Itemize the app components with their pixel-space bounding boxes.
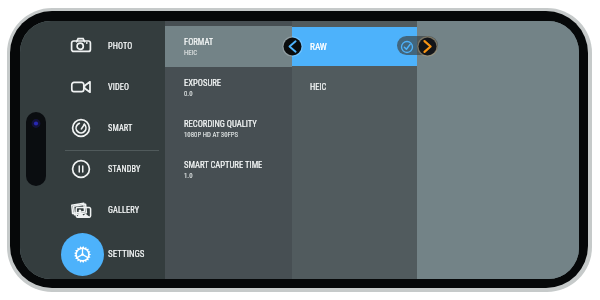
button[interactable]: VIDEO [20,66,165,107]
button[interactable]: SMART CAPTURE TIME [165,149,292,190]
button[interactable]: HEIC [292,66,417,108]
button[interactable]: GALLERY [20,189,165,230]
staticText: HEIC [184,49,198,57]
staticText: FORMAT [184,37,214,47]
button[interactable]: Previous option group [282,36,303,57]
staticText: HEIC [310,82,327,92]
button[interactable]: SETTINGS [20,230,165,279]
staticText: GALLERY [108,205,140,215]
button[interactable]: SMART [20,107,165,148]
button[interactable]: STANDBY [20,148,165,189]
staticText: SETTINGS [108,249,145,260]
button[interactable]: PHOTO [20,25,165,66]
staticText: 0.0 [184,90,193,98]
staticText: 1.0 [184,172,193,180]
staticText: STANDBY [108,164,141,174]
staticText: 1080P HD AT 30FPS [184,131,239,139]
staticText: VIDEO [108,82,130,92]
button[interactable]: RAW [292,27,417,66]
staticText: SMART CAPTURE TIME [184,160,263,170]
staticText: EXPOSURE [184,78,222,88]
button[interactable]: RECORDING QUALITY [165,108,292,149]
button[interactable]: EXPOSURE [165,67,292,108]
button[interactable]: FORMAT [165,26,292,67]
staticText: RECORDING QUALITY [184,119,257,129]
staticText: RAW [310,41,327,52]
button[interactable]: Next option group [417,36,438,57]
staticText: SMART [108,123,133,133]
staticText: PHOTO [108,41,133,51]
